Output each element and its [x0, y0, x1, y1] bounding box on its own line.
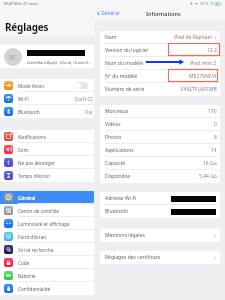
staticText: Informations [146, 10, 181, 17]
button[interactable]: Code [0, 256, 94, 269]
button[interactable]: Numéro de série [100, 83, 220, 96]
staticText: Batterie [18, 273, 36, 279]
other: Mode Avion [75, 82, 88, 89]
staticText: 0 [214, 121, 217, 128]
staticText: Mer. 27 mars [14, 1, 39, 6]
staticText: Vidéos [105, 121, 121, 128]
staticText: Adresse Wi-Fi [105, 195, 137, 202]
button[interactable]: Sons [0, 143, 94, 156]
staticText: Siri et recherche [18, 247, 54, 253]
staticText: Bluetooth [18, 109, 40, 115]
staticText: OuiFi-CC [75, 96, 93, 102]
button[interactable]: Bluetooth [100, 205, 220, 218]
staticText: Applications [105, 147, 134, 154]
staticText: F4KLTFLAFCMB [181, 86, 217, 93]
staticText: Mode Avion [18, 83, 45, 89]
button[interactable]: Général [97, 10, 120, 17]
staticText: Version du logiciel [105, 47, 148, 54]
button[interactable]: Morceaux [100, 105, 220, 118]
staticText: RC [9, 53, 18, 62]
staticText: Centre de contrôle [18, 208, 59, 214]
staticText: Numéro de série [105, 86, 145, 93]
button[interactable]: Wi-Fi [0, 92, 94, 105]
button[interactable]: Nom [100, 31, 220, 44]
staticText: Réglages [5, 20, 49, 33]
staticText: Disponible [105, 173, 131, 180]
button[interactable]: Batterie [0, 269, 94, 282]
staticText: Temps d'écran [18, 173, 50, 179]
button[interactable]: Capacité [100, 157, 220, 170]
staticText: Nom du modèle [105, 60, 143, 67]
button[interactable]: Fond d'écran [0, 230, 94, 243]
staticText: 5,44 Go [199, 173, 217, 180]
button[interactable]: N° du modèle [100, 70, 220, 83]
staticText: Luminosité et affichage [18, 221, 70, 227]
staticText: N° du modèle [105, 73, 138, 80]
staticText: Mentions légales [105, 232, 145, 239]
button[interactable]: Luminosité et affichage [0, 217, 94, 230]
staticText: Général [18, 195, 36, 201]
staticText: Oui [85, 109, 93, 115]
button[interactable]: Siri et recherche [0, 243, 94, 256]
staticText: Nom [105, 34, 117, 41]
staticText: 170 [208, 108, 217, 115]
button[interactable]: Bluetooth [0, 105, 94, 118]
staticText: iPad de Raphael [174, 34, 212, 41]
staticText: Sons [18, 147, 29, 153]
button[interactable]: Disponible [100, 170, 220, 183]
staticText: Identifiant Apple, iCloud, iTunes S... [27, 60, 92, 65]
button[interactable]: Ne pas déranger [0, 156, 94, 169]
staticText: Capacité [105, 160, 126, 167]
staticText: 19:47 [3, 1, 14, 6]
button[interactable]: Vidéos [100, 118, 220, 131]
staticText: Réglages des certificats [105, 254, 161, 261]
staticText: ME279NF/A [189, 73, 217, 80]
staticText: 12.2 [207, 47, 217, 54]
button[interactable]: Réglages des certificats [100, 251, 220, 264]
staticText: Confidentialité [18, 286, 51, 292]
button[interactable]: Notifications [0, 130, 94, 143]
button[interactable]: Applications [100, 144, 220, 157]
button[interactable]: Photos [100, 131, 220, 144]
staticText: 16 Go [203, 160, 217, 167]
staticText: iPad mini 2 [190, 60, 217, 67]
staticText: Photos [105, 134, 122, 141]
staticText: Wi-Fi [18, 96, 29, 102]
button[interactable]: Mentions légales [100, 229, 220, 242]
staticText: Morceaux [105, 108, 129, 115]
button[interactable]: Nom du modèle [100, 57, 220, 70]
staticText: Bluetooth [105, 208, 129, 215]
button[interactable]: Général [0, 191, 94, 204]
staticText: Fond d'écran [18, 234, 47, 240]
staticText: Général [101, 10, 120, 17]
button[interactable]: Temps d'écran [0, 169, 94, 182]
button[interactable]: Centre de contrôle [0, 204, 94, 217]
staticText: 14 [211, 147, 217, 154]
button[interactable]: Adresse Wi-Fi [100, 192, 220, 205]
button[interactable]: RC [0, 45, 94, 68]
staticText: 75 % [200, 1, 209, 6]
staticText: Code [18, 260, 30, 266]
staticText: Ne pas déranger [18, 160, 55, 166]
staticText: 8 [214, 134, 217, 141]
button[interactable]: Mode Avion [0, 79, 94, 92]
button[interactable]: Version du logiciel [100, 44, 220, 57]
staticText: Notifications [18, 134, 46, 140]
button[interactable]: Confidentialité [0, 282, 94, 295]
